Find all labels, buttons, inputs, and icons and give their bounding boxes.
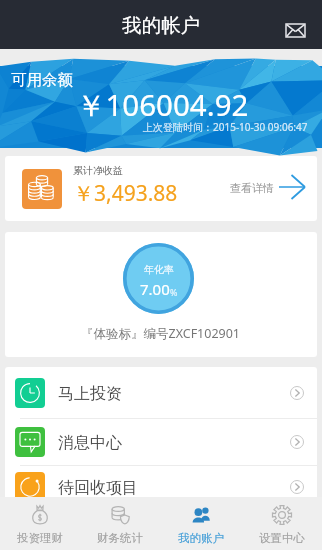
button[interactable]: 我的账户 — [160, 497, 241, 550]
staticText: 累计净收益 — [73, 164, 123, 177]
staticText: 待回收项目 — [58, 478, 138, 498]
staticText: 7.00 — [140, 279, 170, 299]
button[interactable]: 设置中心 — [241, 497, 322, 550]
staticText: ￥3,493.88 — [73, 179, 178, 208]
staticText: 查看详情 — [230, 181, 274, 195]
staticText: ￥106004.92 — [76, 84, 249, 124]
staticText: 可用余额 — [11, 70, 73, 90]
button[interactable]: 财务统计 — [80, 497, 160, 550]
button[interactable]: 投资理财 — [0, 497, 80, 550]
staticText: 投资理财 — [17, 531, 63, 545]
staticText: 上次登陆时间：2015-10-30 09:06:47 — [143, 120, 308, 134]
button[interactable]: 待回收项目 — [5, 466, 317, 507]
staticText: 我的帐户 — [122, 13, 200, 38]
staticText: 我的账户 — [178, 531, 224, 545]
button[interactable]: Messages — [278, 13, 312, 47]
button[interactable]: 马上投资 — [5, 367, 317, 418]
staticText: 马上投资 — [58, 384, 122, 404]
staticText: 财务统计 — [97, 531, 143, 545]
staticText: % — [170, 286, 178, 298]
button[interactable]: 累计净收益 — [5, 156, 317, 221]
button[interactable]: 年化率 — [5, 232, 317, 357]
staticText: 设置中心 — [259, 531, 305, 545]
staticText: 年化率 — [144, 263, 174, 276]
staticText: 消息中心 — [58, 433, 122, 453]
staticText: 『体验标』编号ZXCF102901 — [81, 325, 241, 342]
button[interactable]: 消息中心 — [5, 419, 317, 465]
